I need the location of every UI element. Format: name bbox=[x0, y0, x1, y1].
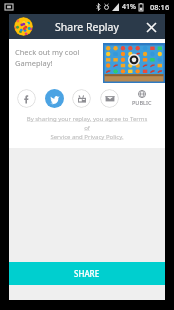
button[interactable]: PUBLIC bbox=[127, 90, 157, 106]
button[interactable]: SHARE bbox=[9, 262, 165, 285]
button[interactable]: Close bbox=[141, 17, 161, 37]
staticText: 08:16 bbox=[150, 2, 170, 12]
staticText: By sharing your replay, you agree to Ter… bbox=[25, 115, 149, 141]
button[interactable]: Replay preview bbox=[103, 43, 165, 83]
button[interactable]: Twitter bbox=[45, 89, 64, 108]
staticText: Share Replay bbox=[55, 20, 119, 34]
staticText: 41% bbox=[122, 2, 136, 12]
button[interactable]: Email bbox=[100, 89, 119, 108]
staticText: Check out my cool Gameplay! bbox=[15, 47, 103, 68]
staticText: SHARE bbox=[74, 268, 100, 279]
staticText: PUBLIC bbox=[132, 99, 152, 106]
button[interactable]: App icon bbox=[14, 17, 33, 36]
button[interactable]: YouTube bbox=[72, 89, 91, 108]
button[interactable]: Facebook bbox=[17, 89, 36, 108]
